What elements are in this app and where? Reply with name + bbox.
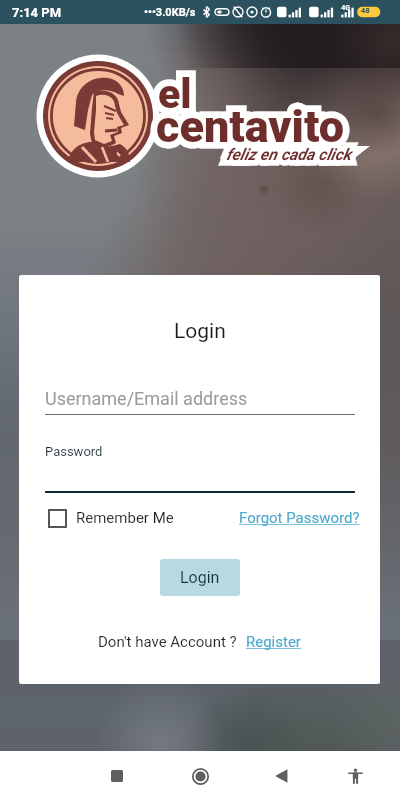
staticText: Remember Me bbox=[76, 509, 174, 527]
button[interactable]: Remember Me bbox=[48, 501, 174, 535]
button[interactable]: Login bbox=[160, 559, 240, 596]
button[interactable]: Accessibility bbox=[335, 756, 375, 796]
button[interactable]: Recent apps bbox=[97, 756, 137, 796]
staticText: Don't have Account ? bbox=[98, 633, 237, 651]
button[interactable]: Forgot Password? bbox=[239, 509, 360, 527]
staticText: 7:14 PM bbox=[12, 5, 62, 20]
staticText: Username/Email address bbox=[45, 388, 248, 409]
button[interactable]: Back bbox=[261, 756, 301, 796]
staticText: Password bbox=[45, 444, 103, 459]
button[interactable]: Home bbox=[180, 756, 220, 796]
button[interactable]: Register bbox=[246, 633, 301, 651]
staticText: •••3.0KB/s bbox=[144, 6, 196, 19]
staticText: Login bbox=[174, 319, 226, 344]
staticText: Login bbox=[180, 568, 220, 587]
